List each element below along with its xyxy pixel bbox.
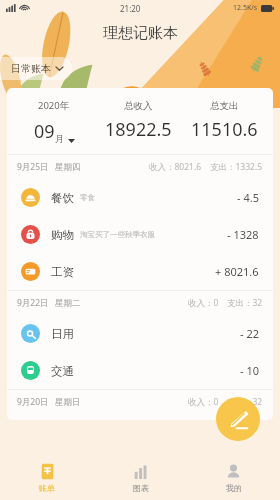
staticText: 图表 bbox=[133, 483, 149, 493]
staticText: 账单 bbox=[39, 483, 55, 493]
staticText: 工资 bbox=[51, 265, 74, 279]
staticText: 支出：32 bbox=[227, 297, 263, 309]
staticText: 淘宝买了一些秋季衣服 bbox=[80, 230, 155, 239]
staticText: 日常账本 bbox=[11, 62, 51, 75]
button[interactable]: 新增记账 bbox=[216, 397, 260, 441]
staticText: - 10 bbox=[240, 363, 259, 378]
staticText: 购物 bbox=[51, 228, 74, 242]
button[interactable]: 交通 bbox=[7, 352, 273, 389]
staticText: 星期四 bbox=[55, 162, 81, 173]
staticText: 零食 bbox=[80, 193, 95, 202]
staticText: - 4.5 bbox=[237, 190, 259, 205]
staticText: 9月22日 bbox=[17, 297, 49, 309]
staticText: + 8021.6 bbox=[215, 264, 259, 279]
staticText: 日用 bbox=[51, 327, 74, 341]
button[interactable]: 餐饮 bbox=[7, 179, 273, 216]
staticText: 9月20日 bbox=[17, 396, 49, 408]
staticText: 收入：0 bbox=[188, 396, 219, 408]
staticText: 18922.5 bbox=[105, 117, 172, 142]
staticText: 收入：8021.6 bbox=[149, 161, 202, 173]
staticText: 09 bbox=[34, 119, 55, 144]
staticText: 我的 bbox=[226, 483, 242, 493]
staticText: 9月25日 bbox=[17, 161, 49, 173]
button[interactable]: 工资 bbox=[7, 253, 273, 290]
staticText: 总收入 bbox=[124, 100, 153, 112]
button[interactable]: 图表 bbox=[94, 456, 187, 500]
button[interactable]: 日用 bbox=[7, 315, 273, 352]
staticText: 星期二 bbox=[55, 298, 81, 309]
button[interactable]: 日常账本 bbox=[0, 57, 72, 80]
staticText: 2020年 bbox=[38, 99, 70, 112]
staticText: 收入：0 bbox=[188, 297, 219, 309]
staticText: 理想记账本 bbox=[103, 24, 178, 43]
button[interactable]: 2020年 bbox=[13, 99, 95, 144]
staticText: 12.5K/s bbox=[233, 3, 258, 13]
staticText: 支出：32 bbox=[227, 396, 263, 408]
staticText: 11510.6 bbox=[191, 117, 258, 142]
staticText: 21:20 bbox=[120, 3, 141, 14]
staticText: 餐饮 bbox=[51, 191, 74, 205]
staticText: 总支出 bbox=[210, 100, 239, 112]
button[interactable]: 我的 bbox=[187, 456, 280, 500]
button[interactable]: 账单 bbox=[0, 456, 94, 500]
staticText: 月 bbox=[55, 133, 64, 144]
staticText: 支出：1332.5 bbox=[210, 161, 263, 173]
staticText: - 22 bbox=[240, 326, 259, 341]
staticText: 星期日 bbox=[55, 397, 81, 408]
button[interactable]: 购物 bbox=[7, 216, 273, 253]
staticText: 交通 bbox=[51, 364, 74, 378]
staticText: - 1328 bbox=[227, 227, 259, 242]
